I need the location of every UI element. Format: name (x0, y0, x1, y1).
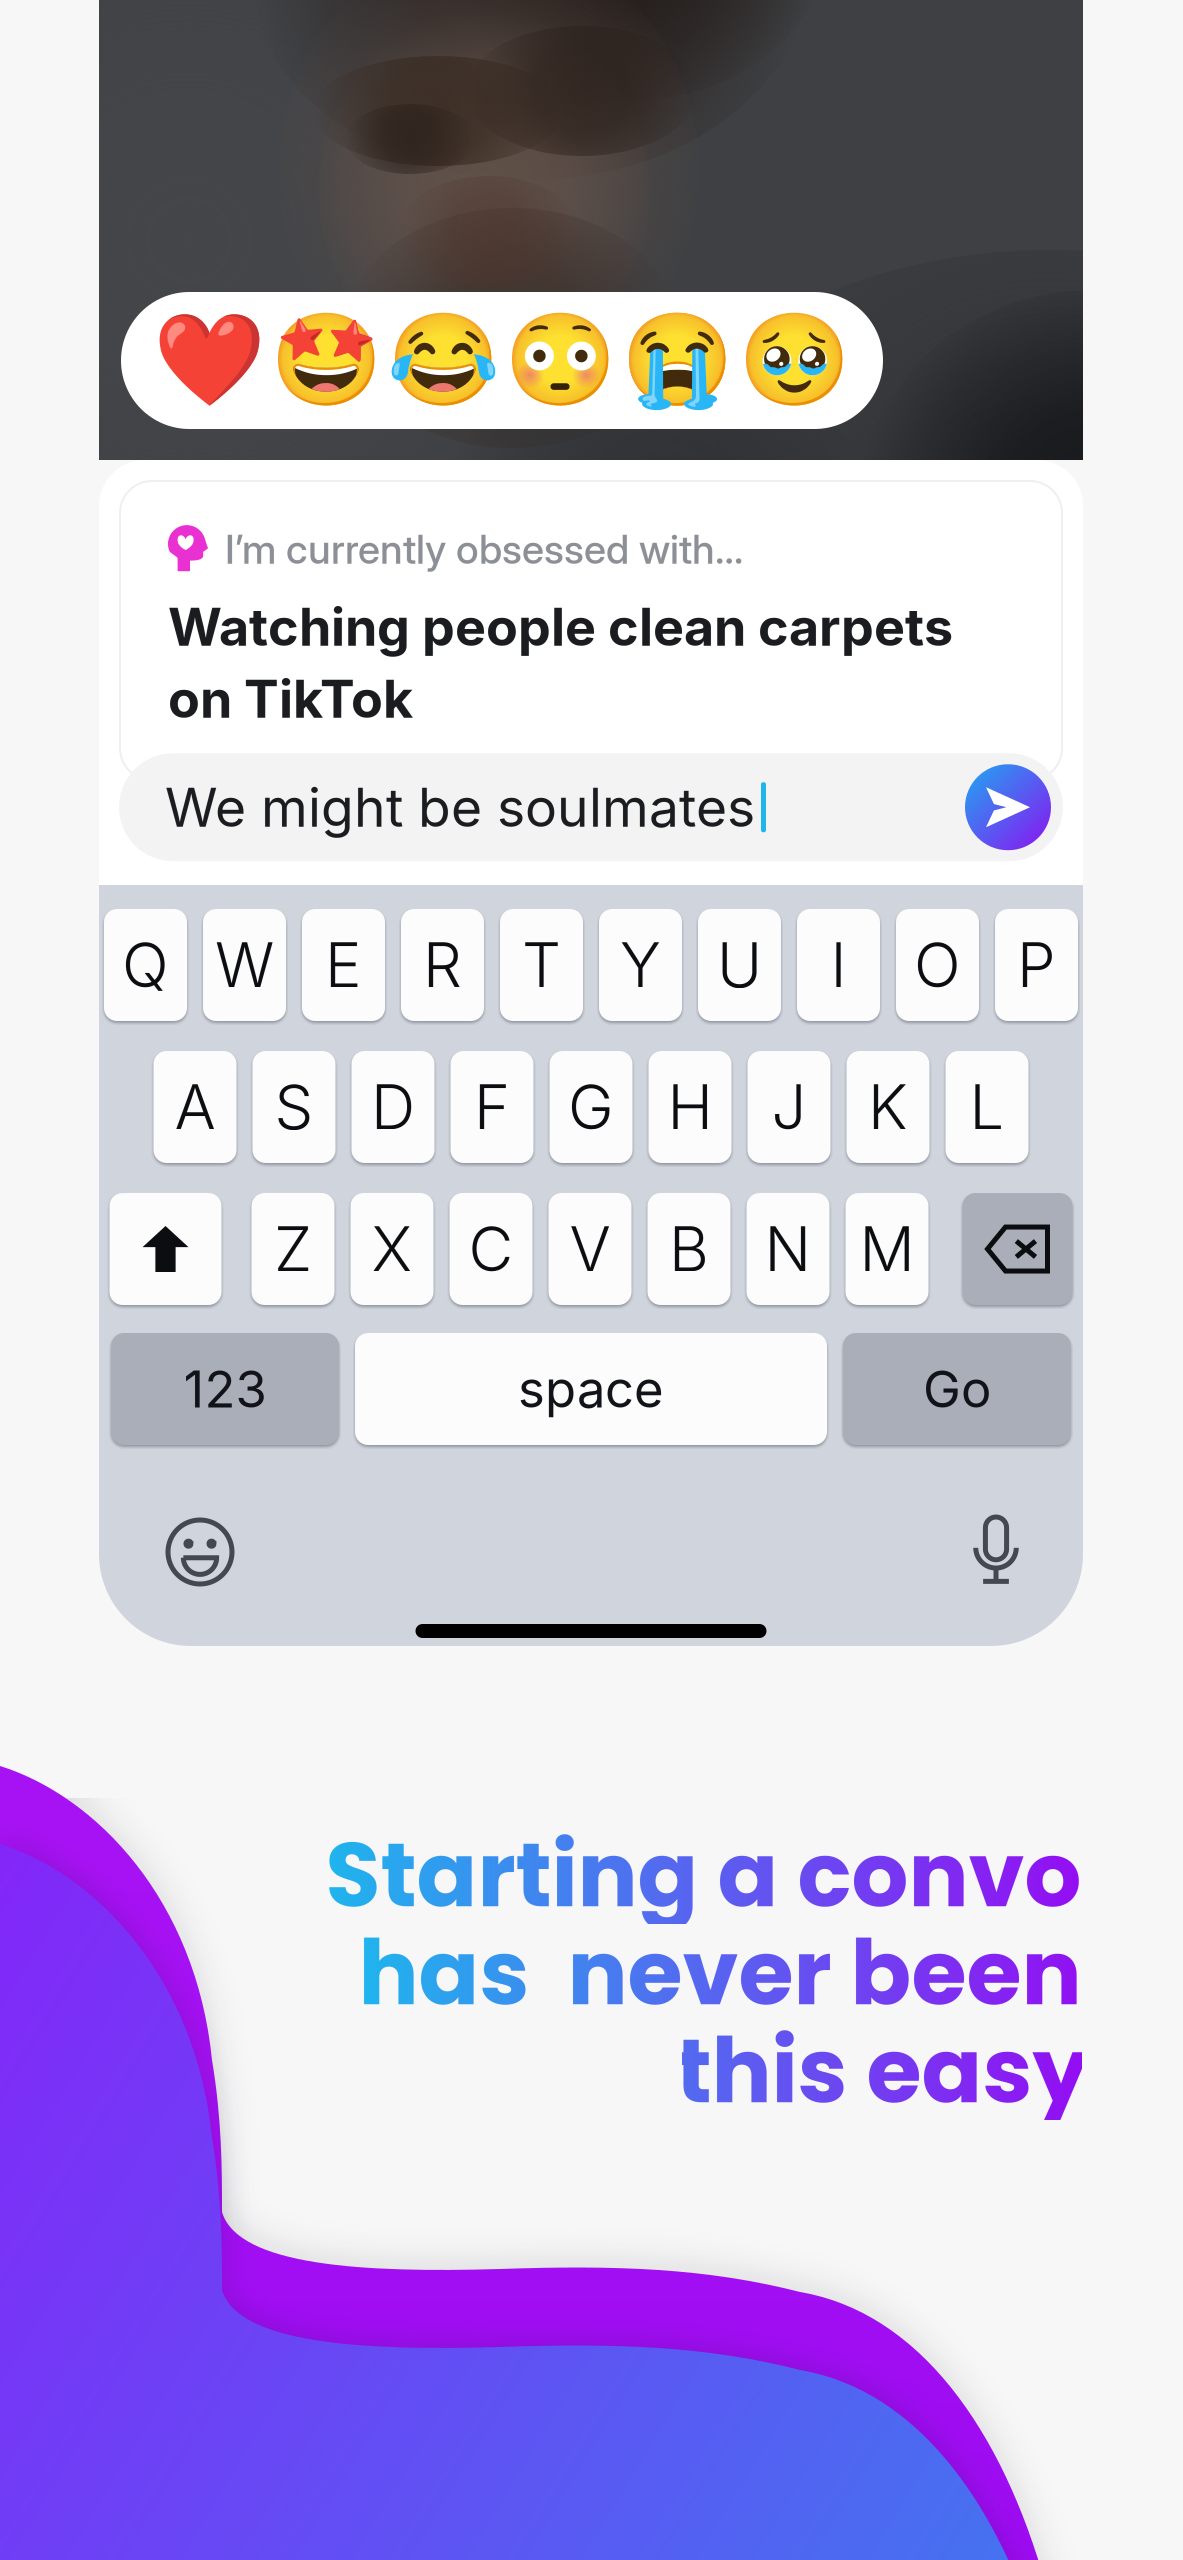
staticText: C (468, 1212, 513, 1286)
button[interactable]: React Surprised (502, 292, 619, 429)
staticText: ❤️ (153, 307, 266, 414)
button[interactable]: O (896, 909, 979, 1021)
staticText: P (1017, 928, 1056, 1002)
button[interactable]: W (203, 909, 286, 1021)
staticText: N (764, 1212, 811, 1286)
staticText: O (914, 928, 961, 1002)
staticText: We might be soulmates (165, 775, 755, 839)
button[interactable]: L (945, 1051, 1028, 1163)
button[interactable]: C (449, 1193, 532, 1305)
staticText: Y (620, 928, 661, 1002)
button[interactable]: K (846, 1051, 929, 1163)
button[interactable]: Send message (965, 764, 1051, 850)
button[interactable]: Q (104, 909, 187, 1021)
staticText: X (371, 1212, 412, 1286)
button[interactable]: V (548, 1193, 631, 1305)
staticText: T (522, 928, 561, 1002)
button[interactable]: React Teary (736, 292, 853, 429)
button[interactable]: J (747, 1051, 830, 1163)
button[interactable]: H (648, 1051, 731, 1163)
staticText: Watching people clean carpets (168, 595, 953, 658)
button[interactable]: D (351, 1051, 434, 1163)
staticText: I (830, 928, 846, 1002)
button[interactable]: Shift (109, 1193, 221, 1305)
button[interactable]: X (350, 1193, 433, 1305)
staticText: D (371, 1070, 415, 1144)
button[interactable]: N (746, 1193, 829, 1305)
staticText: E (325, 928, 362, 1002)
staticText: space (518, 1358, 664, 1420)
button[interactable]: React Love (151, 292, 268, 429)
staticText: H (667, 1070, 712, 1144)
button[interactable]: R (401, 909, 484, 1021)
staticText: 🤩 (270, 307, 383, 414)
staticText: U (717, 928, 762, 1002)
button[interactable]: T (500, 909, 583, 1021)
staticText: Go (923, 1358, 991, 1420)
button[interactable]: Z (251, 1193, 334, 1305)
button[interactable]: React Crying (619, 292, 736, 429)
button[interactable]: S (252, 1051, 335, 1163)
staticText: S (274, 1070, 313, 1144)
button[interactable]: E (302, 909, 385, 1021)
staticText: Q (122, 928, 169, 1002)
button[interactable]: M (845, 1193, 928, 1305)
button[interactable]: G (549, 1051, 632, 1163)
staticText: R (423, 928, 462, 1002)
staticText: K (868, 1070, 908, 1144)
staticText: A (174, 1070, 215, 1144)
button[interactable]: U (698, 909, 781, 1021)
button[interactable]: React Laughing (385, 292, 502, 429)
button[interactable]: React Star struck (268, 292, 385, 429)
staticText: G (568, 1070, 614, 1144)
button[interactable]: Dictate (973, 1517, 1019, 1587)
button[interactable]: Y (599, 909, 682, 1021)
staticText: F (474, 1070, 510, 1144)
staticText: on TikTok (168, 667, 413, 730)
button[interactable]: I (797, 909, 880, 1021)
staticText: B (669, 1212, 709, 1286)
staticText: 😂 (387, 307, 500, 414)
staticText: M (859, 1212, 914, 1286)
staticText: I’m currently obsessed with… (225, 525, 743, 573)
staticText: Z (274, 1212, 312, 1286)
staticText: W (215, 928, 274, 1002)
staticText: 123 (183, 1358, 266, 1420)
staticText: V (569, 1212, 610, 1286)
button[interactable]: Emoji keyboard (166, 1518, 234, 1586)
button[interactable]: Delete (962, 1193, 1072, 1305)
button[interactable]: A (153, 1051, 236, 1163)
button[interactable]: F (450, 1051, 533, 1163)
staticText: J (771, 1070, 806, 1144)
button[interactable]: space (355, 1333, 827, 1445)
button[interactable]: Go (843, 1333, 1071, 1445)
staticText: 🥹 (738, 307, 851, 414)
staticText: 😳 (504, 307, 617, 414)
staticText: 😭 (621, 307, 734, 414)
staticText: L (969, 1070, 1004, 1144)
button[interactable]: 123 (111, 1333, 339, 1445)
button[interactable]: P (995, 909, 1078, 1021)
button[interactable]: B (647, 1193, 730, 1305)
